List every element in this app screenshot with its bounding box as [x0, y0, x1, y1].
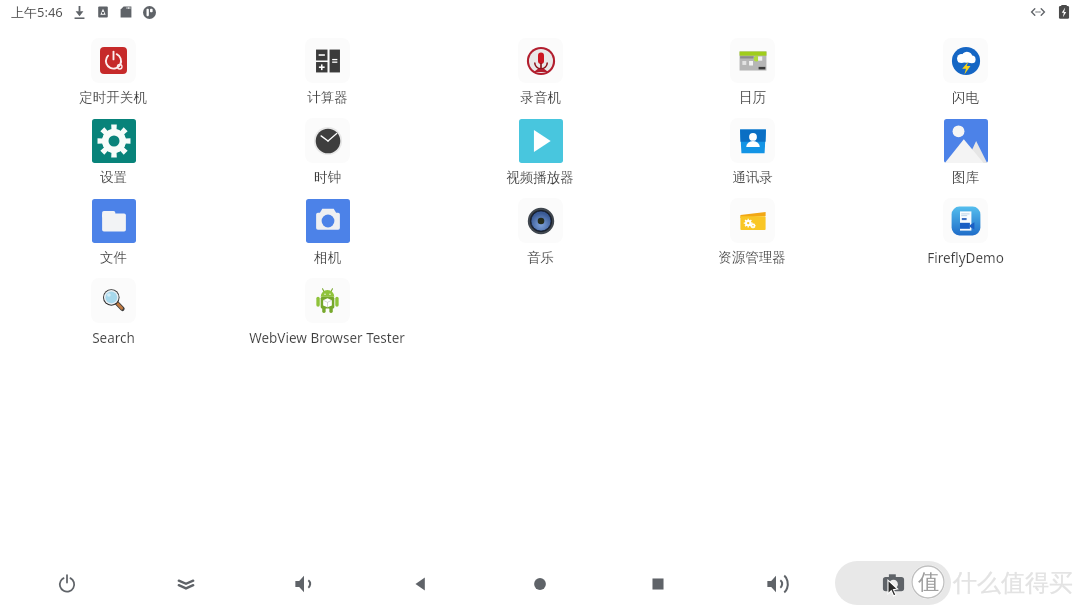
- staticText: 通讯录: [732, 169, 773, 186]
- staticText: 什么值得买: [953, 568, 1073, 598]
- button[interactable]: Power: [43, 560, 91, 608]
- button[interactable]: 相机: [237, 198, 417, 268]
- button[interactable]: 日历: [662, 38, 842, 108]
- staticText: 文件: [100, 249, 127, 266]
- staticText: 闪电: [952, 89, 979, 106]
- button[interactable]: 音乐: [450, 198, 630, 268]
- staticText: 定时开关机: [79, 89, 147, 106]
- button[interactable]: Collapse: [162, 560, 210, 608]
- staticText: 设置: [100, 169, 127, 186]
- staticText: 视频播放器: [506, 169, 574, 186]
- button[interactable]: 资源管理器: [662, 198, 842, 268]
- button[interactable]: 录音机: [450, 38, 630, 108]
- button[interactable]: 定时开关机: [23, 38, 203, 108]
- button[interactable]: WebView Browser Tester: [237, 278, 417, 348]
- staticText: 上午5:46: [11, 3, 63, 21]
- button[interactable]: 通讯录: [662, 118, 842, 188]
- button[interactable]: 视频播放器: [450, 118, 630, 188]
- button[interactable]: Search: [23, 278, 203, 348]
- staticText: Search: [92, 329, 135, 347]
- staticText: 日历: [739, 89, 766, 106]
- button[interactable]: Back: [397, 560, 445, 608]
- button[interactable]: Volume up: [752, 560, 800, 608]
- staticText: 资源管理器: [718, 249, 786, 266]
- staticText: 录音机: [520, 89, 561, 106]
- staticText: 计算器: [307, 89, 348, 106]
- button[interactable]: Screenshot: [835, 561, 951, 605]
- button[interactable]: 计算器: [237, 38, 417, 108]
- staticText: 值: [918, 569, 939, 595]
- staticText: 音乐: [527, 249, 554, 266]
- button[interactable]: 时钟: [237, 118, 417, 188]
- button[interactable]: Volume down: [280, 560, 328, 608]
- staticText: 相机: [314, 249, 341, 266]
- button[interactable]: FireflyDemo: [875, 198, 1055, 268]
- button[interactable]: 图库: [875, 118, 1055, 188]
- staticText: 时钟: [314, 169, 341, 186]
- staticText: WebView Browser Tester: [249, 329, 405, 347]
- staticText: 图库: [952, 169, 979, 186]
- button[interactable]: 闪电: [875, 38, 1055, 108]
- button[interactable]: 文件: [23, 198, 203, 268]
- button[interactable]: Home: [516, 560, 564, 608]
- button[interactable]: 设置: [23, 118, 203, 188]
- staticText: FireflyDemo: [927, 249, 1004, 267]
- button[interactable]: Recents: [634, 560, 682, 608]
